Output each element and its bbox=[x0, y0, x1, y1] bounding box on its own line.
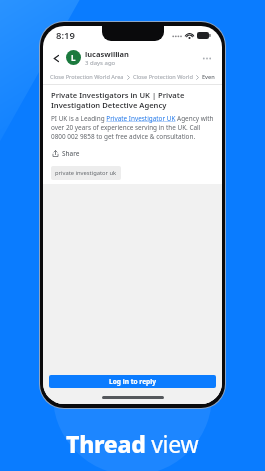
button[interactable]: Events bbox=[202, 73, 215, 81]
staticText: private investigator uk bbox=[55, 169, 117, 177]
staticText: Share bbox=[62, 149, 80, 158]
button[interactable]: L bbox=[66, 50, 81, 65]
staticText: 8:19 bbox=[56, 29, 75, 42]
button[interactable]: Close Protection World Area bbox=[50, 73, 124, 81]
staticText: lucaswillian bbox=[85, 49, 129, 59]
staticText: PI UK is a Leading Private Investigator … bbox=[51, 114, 214, 141]
staticText: L bbox=[71, 52, 76, 63]
staticText: Thread view bbox=[66, 428, 199, 459]
button[interactable]: Close Protection World bbox=[133, 73, 193, 81]
button[interactable]: Log in to reply bbox=[49, 375, 216, 388]
staticText: Private Investigators in UK | Private In… bbox=[51, 90, 214, 110]
button[interactable]: Back bbox=[49, 51, 63, 65]
staticText: Log in to reply bbox=[109, 377, 157, 386]
button[interactable]: Share bbox=[51, 147, 81, 160]
button[interactable]: More options bbox=[200, 51, 214, 65]
staticText: 3 days ago bbox=[85, 59, 116, 67]
button[interactable]: private investigator uk bbox=[51, 166, 121, 180]
